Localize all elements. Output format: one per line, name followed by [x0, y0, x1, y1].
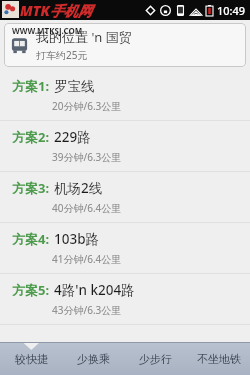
button[interactable]: 方案4: [0, 223, 250, 273]
button[interactable]: Bus [4, 23, 246, 67]
staticText: 43分钟/6.3公里 [52, 303, 122, 317]
staticText: 4路'n k204路 [54, 281, 135, 299]
other: Bus [10, 36, 29, 55]
button[interactable]: 少换乘 [62, 342, 124, 375]
staticText: 41分钟/6.4公里 [52, 252, 122, 266]
staticText: 机场2线 [54, 179, 103, 197]
button[interactable]: 较快捷 [0, 342, 62, 375]
staticText: 方案2: [12, 128, 50, 146]
button[interactable]: 少步行 [124, 342, 187, 375]
staticText: 少步行 [139, 352, 172, 366]
staticText: 103b路 [54, 230, 100, 248]
staticText: 方案3: [12, 179, 50, 197]
button[interactable]: 方案1: [0, 70, 250, 120]
staticText: 方案5: [12, 281, 50, 299]
staticText: 打车约25元 [36, 48, 88, 62]
staticText: 少换乘 [77, 352, 110, 366]
staticText: 20分钟/6.3公里 [52, 99, 122, 113]
staticText: MTK手机网 [20, 1, 92, 20]
staticText: 方案1: [12, 77, 50, 95]
staticText: 较快捷 [15, 352, 48, 366]
button[interactable]: 方案5: [0, 274, 250, 324]
staticText: 10:49 [217, 3, 246, 18]
button[interactable]: 方案2: [0, 121, 250, 171]
staticText: 我的位置 'n 国贸 [36, 28, 132, 46]
button[interactable]: 方案3: [0, 172, 250, 222]
staticText: WWW.MTKSJ.COM [12, 25, 83, 36]
staticText: 方案4: [12, 230, 50, 248]
staticText: 229路 [54, 128, 91, 146]
staticText: 不坐地铁 [197, 352, 241, 366]
staticText: 罗宝线 [54, 78, 95, 95]
staticText: 39分钟/6.3公里 [52, 150, 122, 164]
staticText: 40分钟/6.4公里 [52, 201, 122, 215]
button[interactable]: 不坐地铁 [187, 342, 250, 375]
